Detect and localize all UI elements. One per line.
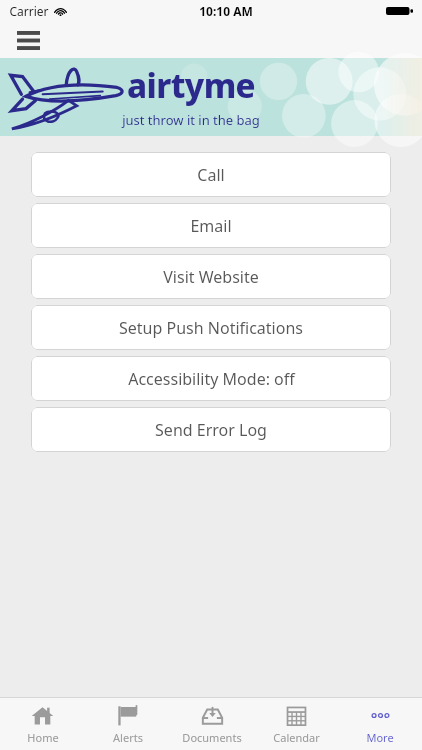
staticText: Alerts — [113, 730, 143, 745]
staticText: Carrier — [9, 3, 49, 19]
staticText: Accessibility Mode: off — [128, 368, 295, 390]
staticText: Send Error Log — [155, 419, 267, 441]
staticText: Call — [197, 164, 225, 186]
button[interactable]: Send Error Log — [31, 407, 391, 452]
button[interactable]: Email — [31, 203, 391, 248]
button[interactable]: Setup Push Notifications — [31, 305, 391, 350]
staticText: Email — [190, 215, 232, 237]
staticText: More — [366, 730, 394, 745]
button[interactable]: Call — [31, 152, 391, 197]
staticText: Documents — [182, 730, 242, 745]
button[interactable]: Visit Website — [31, 254, 391, 299]
button[interactable]: More — [338, 698, 422, 750]
staticText: just throw it in the bag — [122, 111, 260, 129]
staticText: Calendar — [273, 730, 320, 745]
button[interactable]: Accessibility Mode: off — [31, 356, 391, 401]
staticText: airtyme — [127, 63, 255, 108]
button[interactable]: Menu — [6, 22, 50, 58]
staticText: Visit Website — [163, 266, 259, 288]
button[interactable]: Alerts — [85, 698, 170, 750]
button[interactable]: Calendar — [254, 698, 338, 750]
staticText: Setup Push Notifications — [119, 317, 303, 339]
button[interactable]: Documents — [170, 698, 254, 750]
staticText: 10:10 AM — [199, 3, 253, 19]
staticText: Home — [27, 730, 59, 745]
button[interactable]: Home — [0, 698, 85, 750]
